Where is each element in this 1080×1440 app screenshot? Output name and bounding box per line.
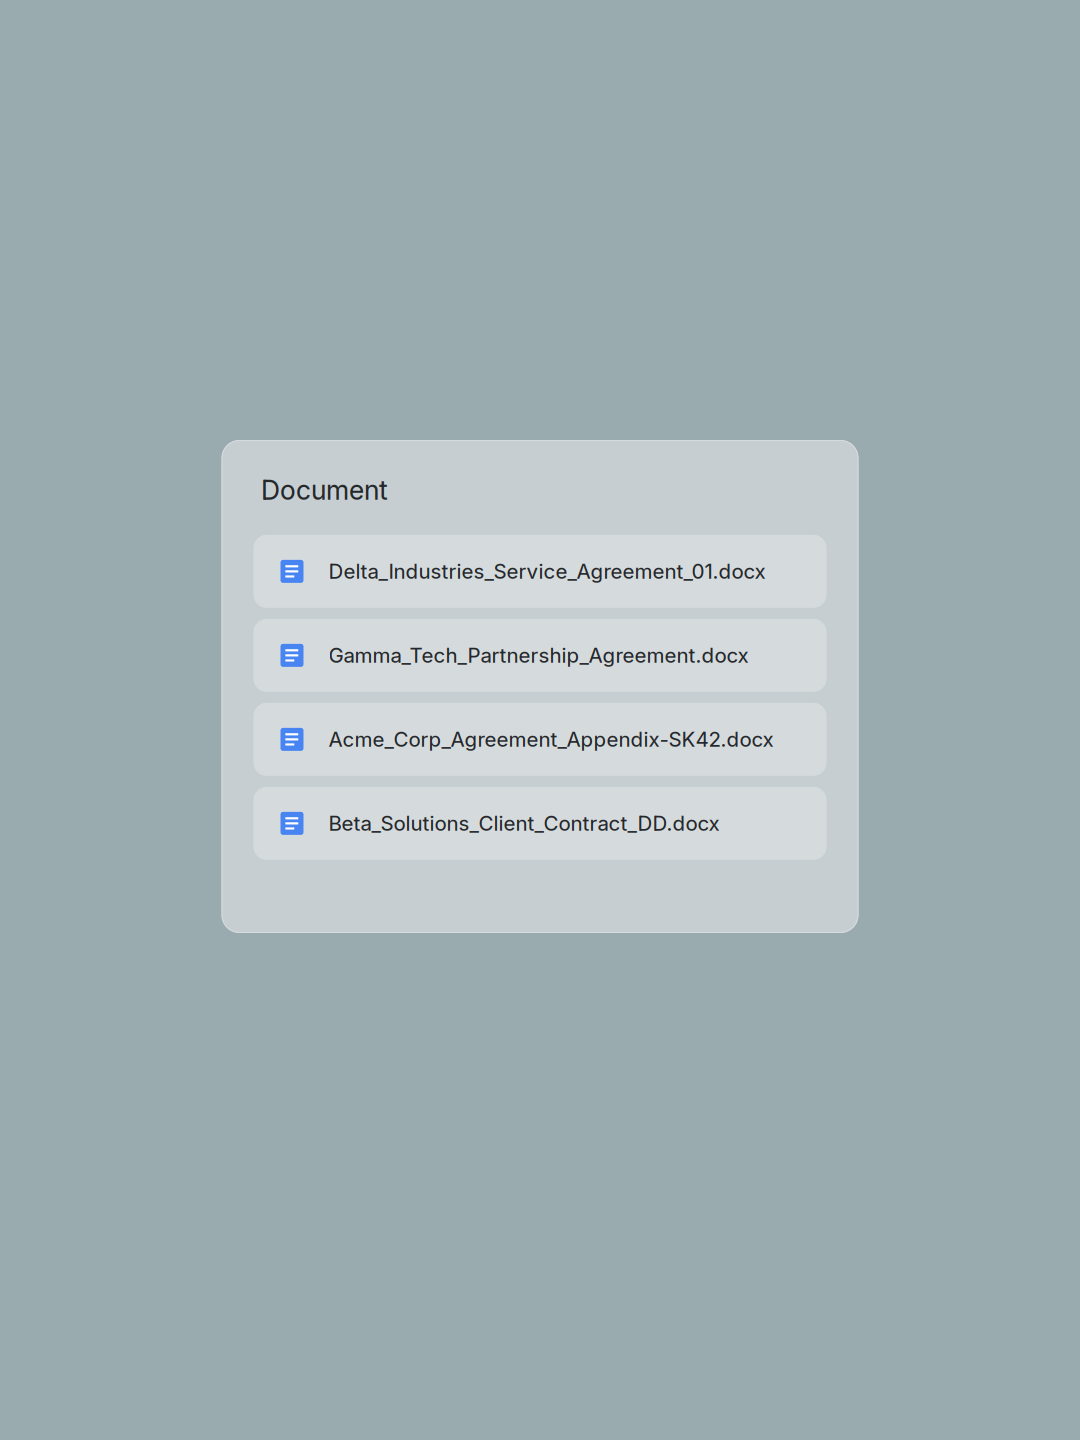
button[interactable]: Acme_Corp_Agreement_Appendix-SK42.docx [253, 703, 826, 776]
staticText: Beta_Solutions_Client_Contract_DD.docx [328, 811, 719, 836]
button[interactable]: Gamma_Tech_Partnership_Agreement.docx [253, 619, 826, 692]
staticText: Delta_Industries_Service_Agreement_01.do… [328, 559, 765, 584]
button[interactable]: Delta_Industries_Service_Agreement_01.do… [253, 535, 826, 608]
staticText: Acme_Corp_Agreement_Appendix-SK42.docx [328, 727, 773, 752]
button[interactable]: Beta_Solutions_Client_Contract_DD.docx [253, 787, 826, 860]
staticText: Gamma_Tech_Partnership_Agreement.docx [328, 643, 748, 668]
staticText: Document [261, 474, 388, 506]
